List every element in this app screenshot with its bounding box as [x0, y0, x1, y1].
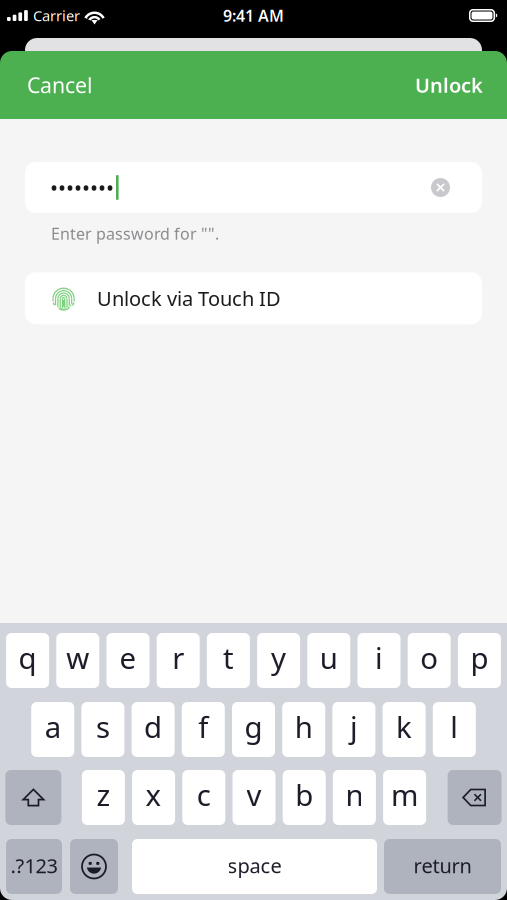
staticText: f: [198, 707, 208, 746]
staticText: Unlock: [415, 72, 483, 98]
button[interactable]: x: [132, 770, 175, 825]
button[interactable]: a: [31, 702, 74, 757]
staticText: w: [66, 638, 89, 677]
button[interactable]: t: [207, 633, 250, 688]
button[interactable]: Delete: [448, 770, 502, 825]
button[interactable]: i: [357, 633, 400, 688]
staticText: Unlock via Touch ID: [97, 285, 281, 312]
staticText: b: [295, 775, 313, 814]
button[interactable]: y: [257, 633, 300, 688]
button[interactable]: k: [383, 702, 426, 757]
staticText: o: [420, 638, 438, 677]
staticText: Cancel: [27, 71, 93, 99]
staticText: r: [172, 638, 184, 677]
staticText: z: [96, 775, 110, 814]
button[interactable]: j: [332, 702, 375, 757]
staticText: Enter password for "".: [51, 223, 219, 244]
staticText: g: [244, 707, 262, 746]
button[interactable]: s: [81, 702, 124, 757]
staticText: return: [413, 852, 471, 879]
button[interactable]: c: [182, 770, 225, 825]
staticText: c: [197, 775, 211, 814]
button[interactable]: q: [6, 633, 49, 688]
staticText: p: [470, 638, 488, 677]
button[interactable]: g: [232, 702, 275, 757]
staticText: l: [450, 707, 458, 746]
button[interactable]: n: [333, 770, 376, 825]
staticText: .?123: [10, 852, 57, 879]
button[interactable]: Cancel: [19, 60, 101, 110]
staticText: j: [350, 707, 358, 746]
staticText: m: [391, 775, 418, 814]
button[interactable]: m: [383, 770, 426, 825]
button[interactable]: f: [182, 702, 225, 757]
button[interactable]: z: [82, 770, 125, 825]
staticText: t: [223, 638, 234, 677]
staticText: e: [119, 638, 136, 677]
staticText: s: [96, 707, 110, 746]
button[interactable]: Unlock: [407, 61, 488, 109]
button[interactable]: h: [282, 702, 325, 757]
button[interactable]: u: [307, 633, 350, 688]
button[interactable]: o: [408, 633, 451, 688]
staticText: space: [227, 852, 281, 879]
staticText: h: [295, 707, 313, 746]
button[interactable]: Emoji keyboard: [70, 839, 118, 894]
staticText: q: [19, 638, 37, 677]
staticText: i: [375, 638, 383, 677]
button[interactable]: Shift: [5, 770, 61, 825]
button[interactable]: l: [433, 702, 476, 757]
button[interactable]: r: [157, 633, 200, 688]
button[interactable]: .?123: [6, 839, 62, 894]
staticText: x: [146, 775, 162, 814]
staticText: v: [246, 775, 261, 814]
staticText: y: [271, 638, 286, 677]
staticText: k: [396, 707, 412, 746]
button[interactable]: d: [132, 702, 175, 757]
button[interactable]: space: [132, 839, 377, 894]
button[interactable]: b: [283, 770, 326, 825]
staticText: a: [45, 707, 61, 746]
button[interactable]: return: [384, 839, 501, 894]
staticText: Carrier: [33, 6, 80, 25]
staticText: d: [144, 707, 162, 746]
staticText: ••••••••: [50, 173, 114, 202]
staticText: n: [345, 775, 363, 814]
button[interactable]: Unlock via Touch ID: [25, 272, 482, 324]
button[interactable]: e: [106, 633, 149, 688]
button[interactable]: w: [56, 633, 99, 688]
staticText: u: [320, 638, 338, 677]
button[interactable]: v: [232, 770, 275, 825]
staticText: 9:41 AM: [223, 5, 284, 26]
button[interactable]: p: [458, 633, 501, 688]
